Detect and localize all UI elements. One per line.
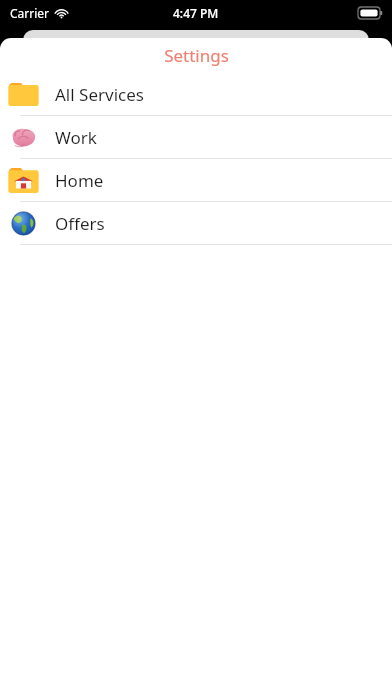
- staticText: Settings: [164, 44, 229, 67]
- staticText: Offers: [55, 212, 105, 235]
- staticText: Carrier: [10, 5, 50, 21]
- staticText: Home: [55, 169, 104, 192]
- staticText: Work: [55, 126, 97, 149]
- button[interactable]: Home: [0, 159, 392, 201]
- button[interactable]: Offers: [0, 202, 392, 244]
- button[interactable]: All Services: [0, 73, 392, 115]
- button[interactable]: Work: [0, 116, 392, 158]
- staticText: 4:47 PM: [173, 5, 219, 21]
- staticText: All Services: [55, 83, 144, 106]
